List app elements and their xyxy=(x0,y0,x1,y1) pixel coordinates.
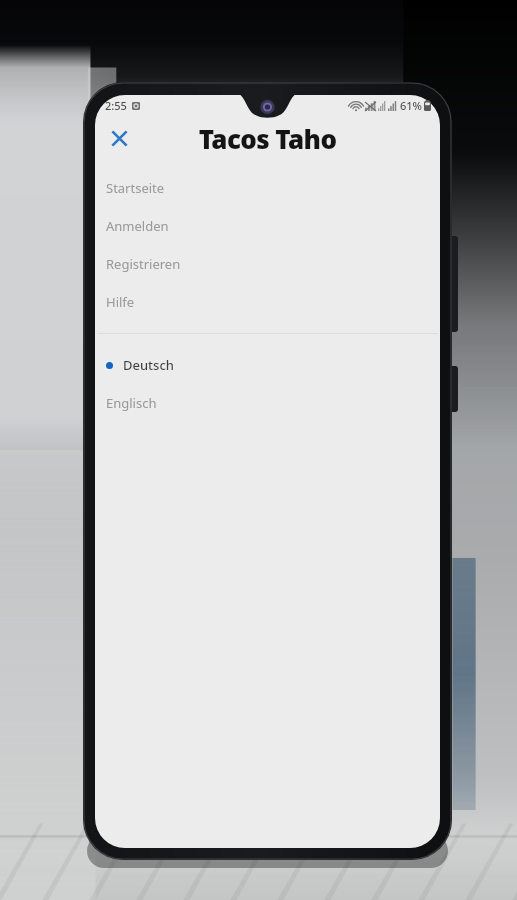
staticText: Registrieren xyxy=(106,255,181,273)
staticText: Anmelden xyxy=(106,217,169,235)
button[interactable]: Englisch xyxy=(95,384,440,422)
button[interactable]: Deutsch xyxy=(95,346,440,384)
staticText: 61% xyxy=(400,98,422,113)
button[interactable]: Startseite xyxy=(95,169,440,207)
staticText: Startseite xyxy=(106,179,165,197)
button[interactable]: Anmelden xyxy=(95,207,440,245)
staticText: Deutsch xyxy=(123,356,174,374)
staticText: Hilfe xyxy=(106,293,135,311)
staticText: Englisch xyxy=(106,394,157,412)
button[interactable]: Registrieren xyxy=(95,245,440,283)
staticText: Tacos Taho xyxy=(95,121,440,156)
button[interactable]: Close menu xyxy=(101,120,137,156)
button[interactable]: Hilfe xyxy=(95,283,440,321)
staticText: 2:55 xyxy=(105,98,127,113)
